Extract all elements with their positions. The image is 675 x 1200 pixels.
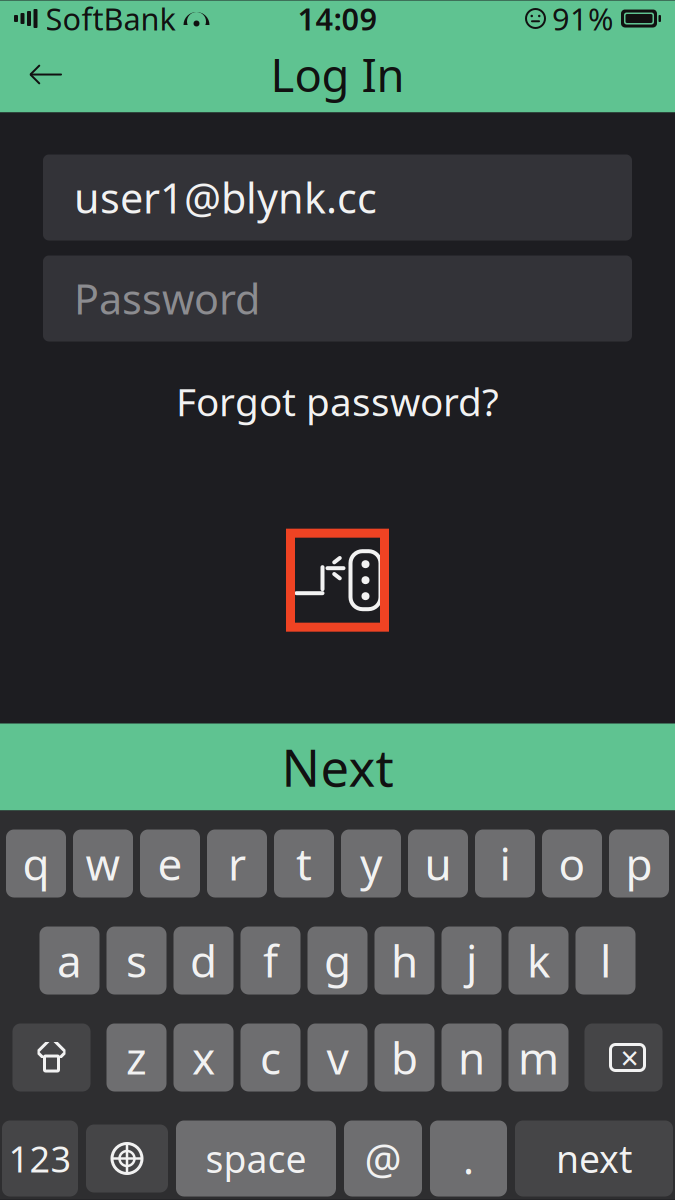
staticText: j <box>466 931 477 990</box>
staticText: t <box>296 834 312 893</box>
button[interactable]: n <box>441 1023 501 1091</box>
button[interactable]: d <box>173 926 233 994</box>
staticText: v <box>326 1028 348 1087</box>
button[interactable]: 123 <box>2 1120 78 1196</box>
button[interactable]: j <box>441 926 501 994</box>
button[interactable]: i <box>475 829 535 897</box>
button[interactable]: q <box>6 829 66 897</box>
button[interactable]: Next <box>0 723 675 810</box>
button[interactable]: w <box>73 829 133 897</box>
staticText: f <box>263 931 278 990</box>
button[interactable]: Back <box>16 44 76 104</box>
staticText: w <box>85 834 120 893</box>
staticText: space <box>205 1134 306 1183</box>
staticText: SoftBank <box>45 0 175 39</box>
staticText: k <box>527 931 550 990</box>
button[interactable]: r <box>207 829 267 897</box>
staticText: n <box>458 1028 485 1087</box>
button[interactable]: v <box>307 1023 367 1091</box>
button[interactable]: Delete <box>584 1023 662 1091</box>
staticText: d <box>190 931 217 990</box>
staticText: c <box>260 1028 281 1087</box>
staticText: e <box>157 834 182 893</box>
staticText: Next <box>281 733 393 801</box>
staticText: o <box>558 834 585 893</box>
button[interactable]: @ <box>344 1120 422 1196</box>
button[interactable]: x <box>173 1023 233 1091</box>
staticText: 14:09 <box>297 0 377 39</box>
staticText: a <box>57 931 82 990</box>
button[interactable]: t <box>274 829 334 897</box>
staticText: y <box>360 834 382 893</box>
button[interactable]: e <box>140 829 200 897</box>
button[interactable]: f <box>240 926 300 994</box>
staticText: s <box>126 931 147 990</box>
staticText: l <box>600 931 611 990</box>
button[interactable]: Shift <box>12 1023 90 1091</box>
staticText: @ <box>364 1131 401 1186</box>
button[interactable]: u <box>408 829 468 897</box>
staticText: i <box>499 834 510 893</box>
staticText: Forgot password? <box>176 375 499 427</box>
staticText: . <box>463 1131 474 1186</box>
staticText: x <box>192 1028 215 1087</box>
button[interactable]: g <box>307 926 367 994</box>
button[interactable]: p <box>609 829 669 897</box>
button[interactable]: space <box>176 1120 336 1196</box>
staticText: r <box>228 834 246 893</box>
button[interactable]: m <box>508 1023 568 1091</box>
staticText: next <box>556 1134 632 1183</box>
button[interactable]: h <box>374 926 434 994</box>
staticText: m <box>518 1028 559 1087</box>
button[interactable]: c <box>240 1023 300 1091</box>
button[interactable]: next <box>515 1120 673 1196</box>
button[interactable]: o <box>542 829 602 897</box>
staticText: q <box>22 834 49 893</box>
button[interactable]: y <box>341 829 401 897</box>
button[interactable]: Switch keyboard <box>86 1124 168 1192</box>
button[interactable]: k <box>508 926 568 994</box>
staticText: b <box>391 1028 418 1087</box>
staticText: 91% <box>552 0 613 39</box>
button[interactable]: b <box>374 1023 434 1091</box>
button[interactable]: . <box>430 1120 507 1196</box>
staticText: Password <box>74 271 260 326</box>
staticText: Log In <box>270 44 404 105</box>
button[interactable]: a <box>39 926 99 994</box>
staticText: g <box>324 931 351 990</box>
button[interactable]: Forgot password? <box>156 365 519 437</box>
staticText: 123 <box>8 1135 71 1182</box>
button[interactable]: z <box>106 1023 166 1091</box>
button[interactable]: l <box>575 926 635 994</box>
staticText: × <box>620 1036 638 1079</box>
staticText: u <box>424 834 451 893</box>
staticText: h <box>391 931 418 990</box>
staticText: user1@blynk.cc <box>74 170 377 225</box>
button[interactable]: s <box>106 926 166 994</box>
staticText: z <box>126 1028 147 1087</box>
staticText: p <box>625 834 652 893</box>
